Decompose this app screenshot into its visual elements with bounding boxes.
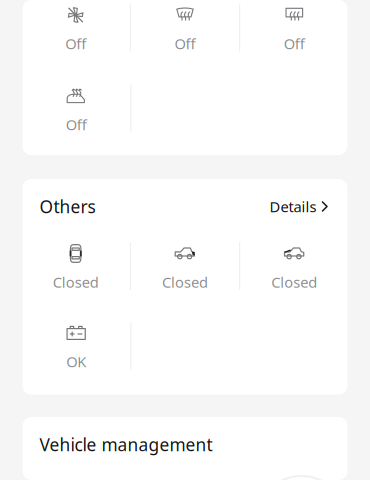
staticText: Closed [162,272,208,292]
button[interactable]: Off [21,2,130,52]
staticText: Details [269,197,316,216]
staticText: Vehicle management [39,433,212,456]
button[interactable]: Closed [131,241,239,291]
button[interactable]: OK [22,320,130,370]
button[interactable]: Off [240,2,348,52]
staticText: Closed [53,272,99,292]
button[interactable]: Off [22,83,130,133]
button[interactable]: Vehicle management [22,417,347,480]
button[interactable]: Closed [21,241,130,291]
staticText: Others [39,195,95,218]
staticText: OK [66,352,86,371]
staticText: Closed [271,272,317,292]
staticText: Off [284,34,305,53]
staticText: Off [66,115,87,134]
button[interactable]: Details [269,197,328,216]
button[interactable]: Closed [240,241,348,291]
button[interactable]: Off [131,2,239,52]
staticText: Off [65,34,86,53]
staticText: Off [174,34,195,53]
